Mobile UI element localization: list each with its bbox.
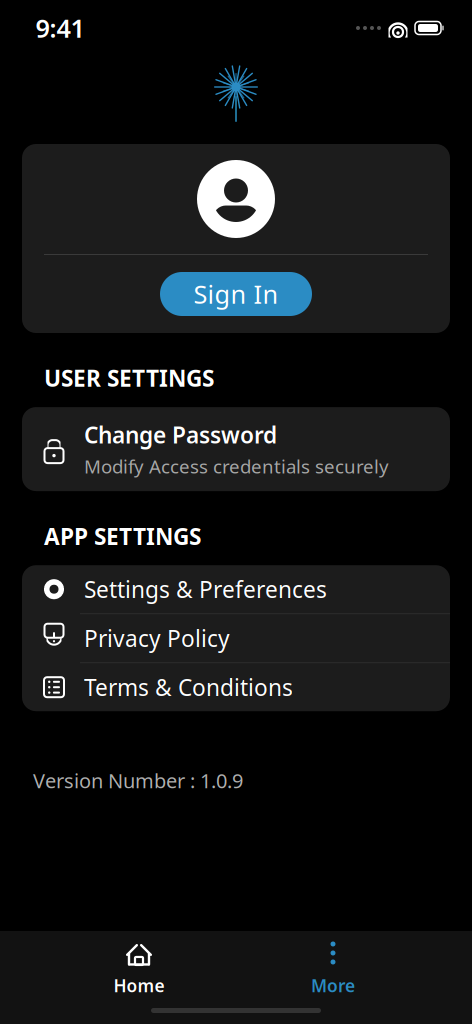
staticText: 9:41 bbox=[35, 11, 84, 45]
staticText: Change Password bbox=[84, 420, 277, 450]
staticText: Privacy Policy bbox=[84, 623, 230, 653]
staticText: Settings & Preferences bbox=[84, 574, 327, 604]
staticText: Version Number : 1.0.9 bbox=[33, 767, 243, 794]
staticText: Modify Access credentials securely bbox=[84, 454, 389, 479]
button[interactable]: Change Password bbox=[22, 407, 450, 491]
button[interactable]: Terms & Conditions bbox=[22, 663, 450, 711]
button[interactable]: More bbox=[278, 941, 388, 997]
staticText: Terms & Conditions bbox=[84, 672, 293, 702]
staticText: More bbox=[311, 974, 355, 997]
button[interactable]: Privacy Policy bbox=[22, 614, 450, 662]
button[interactable]: Home bbox=[84, 941, 194, 997]
staticText: APP SETTINGS bbox=[44, 521, 201, 551]
button[interactable]: Sign In bbox=[160, 272, 312, 316]
staticText: Home bbox=[113, 974, 164, 997]
staticText: USER SETTINGS bbox=[44, 363, 214, 393]
button[interactable]: Settings & Preferences bbox=[22, 565, 450, 613]
staticText: Sign In bbox=[193, 277, 278, 311]
